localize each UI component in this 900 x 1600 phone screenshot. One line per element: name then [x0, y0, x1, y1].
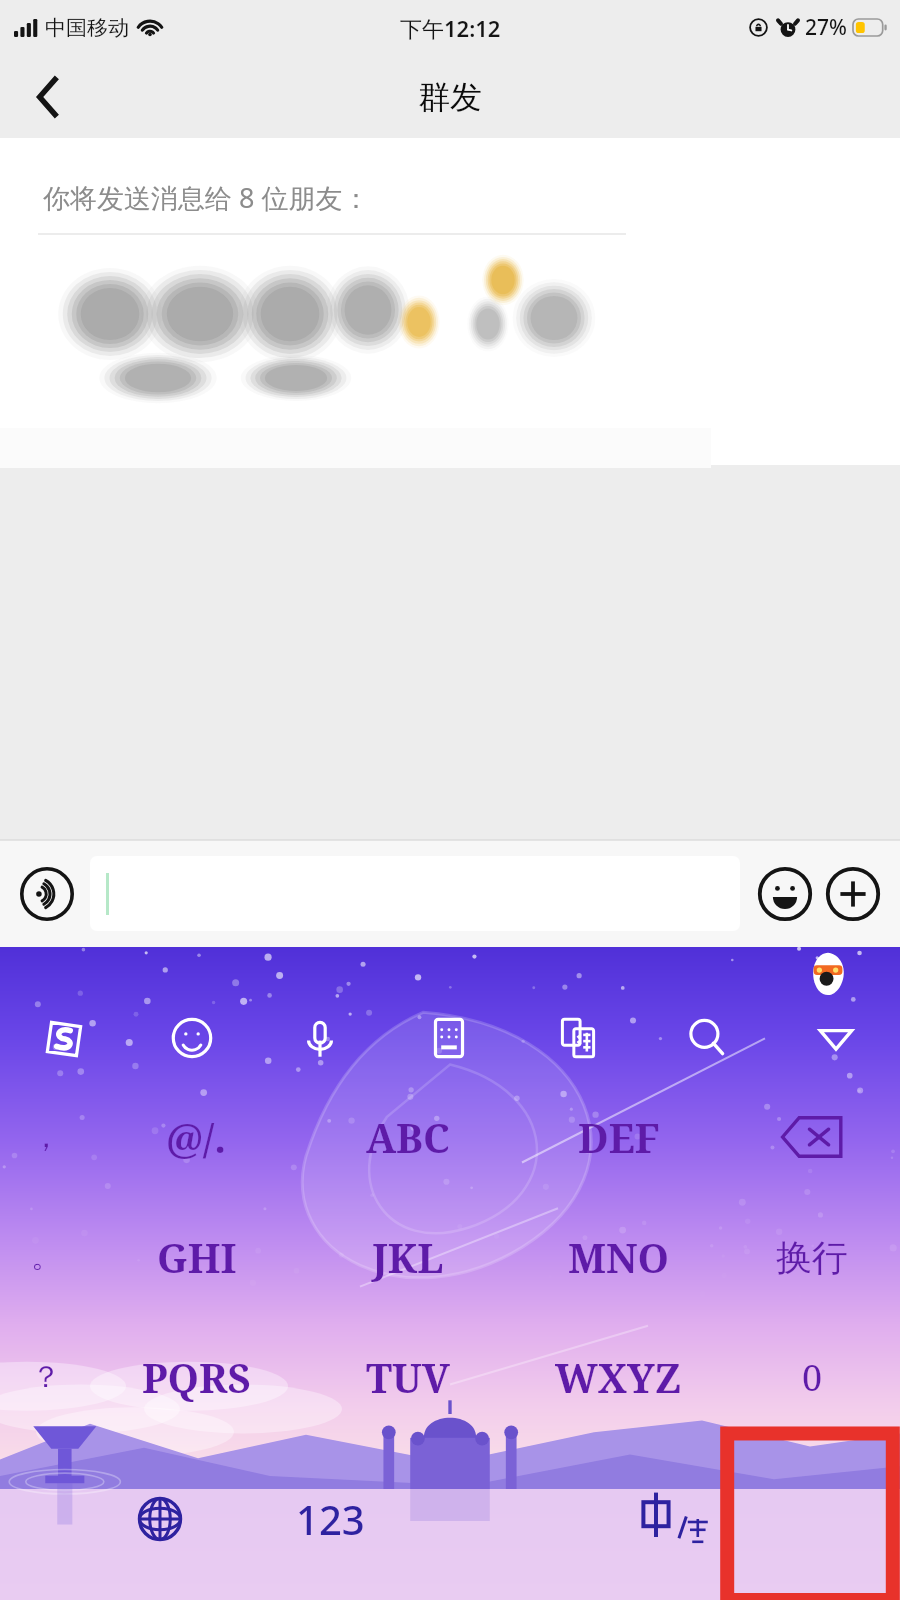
staticText: TUV	[366, 1350, 450, 1404]
button[interactable]: Assistant	[804, 949, 852, 997]
button[interactable]: ABC	[302, 1077, 513, 1197]
button[interactable]: PQRS	[91, 1317, 302, 1437]
button[interactable]	[90, 856, 740, 931]
button[interactable]: Keyboard layout	[384, 999, 513, 1077]
button[interactable]: Theme	[416, 1437, 587, 1600]
staticText: 下午12:12	[400, 13, 501, 43]
button[interactable]: Back	[0, 55, 96, 138]
button[interactable]: JKL	[302, 1197, 513, 1317]
button[interactable]: ，	[0, 1077, 91, 1197]
staticText: GHI	[157, 1230, 237, 1284]
button[interactable]: 换行	[724, 1197, 900, 1317]
staticText: ？	[31, 1358, 61, 1396]
staticText: ABC	[366, 1110, 450, 1164]
button[interactable]: TUV	[302, 1317, 513, 1437]
button[interactable]	[0, 1437, 74, 1600]
button[interactable]: 。	[0, 1197, 91, 1317]
staticText: MNO	[568, 1230, 670, 1284]
staticText: DEF	[578, 1110, 660, 1164]
staticText: PQRS	[142, 1350, 251, 1404]
button[interactable]: WXYZ	[513, 1317, 724, 1437]
button[interactable]: GHI	[91, 1197, 302, 1317]
other: Delete	[780, 1114, 844, 1160]
button[interactable]: Sogou	[0, 999, 128, 1077]
button[interactable]: Send	[758, 1437, 900, 1600]
button[interactable]: 0	[724, 1317, 900, 1437]
staticText: 。	[31, 1238, 61, 1276]
staticText: WXYZ	[555, 1350, 682, 1404]
button[interactable]: ？	[0, 1317, 91, 1437]
staticText: @/.	[166, 1110, 227, 1164]
button[interactable]: More	[824, 865, 882, 923]
button[interactable]: 123	[245, 1437, 416, 1600]
button[interactable]: Translate	[513, 999, 642, 1077]
staticText: JKL	[372, 1230, 444, 1284]
staticText: 群发	[418, 77, 482, 117]
button[interactable]: Emoji	[128, 999, 256, 1077]
button[interactable]: Emoji	[756, 865, 814, 923]
button[interactable]: Input language	[74, 1437, 245, 1600]
button[interactable]: Chinese English toggle	[587, 1437, 758, 1600]
button[interactable]: Hide keyboard	[771, 999, 900, 1077]
button[interactable]: Voice input	[18, 865, 76, 923]
staticText: 中国移动	[45, 15, 129, 41]
staticText: 27%	[805, 13, 847, 42]
button[interactable]: @/.	[91, 1077, 302, 1197]
button[interactable]: Recipients	[38, 234, 638, 434]
staticText: ，	[31, 1118, 61, 1156]
button[interactable]: Search	[642, 999, 771, 1077]
staticText: 0	[802, 1353, 823, 1402]
staticText: 123	[296, 1492, 365, 1546]
staticText: 换行	[776, 1235, 848, 1280]
button[interactable]: DEF	[513, 1077, 724, 1197]
button[interactable]: Voice	[256, 999, 384, 1077]
button[interactable]: Delete	[724, 1077, 900, 1197]
staticText: 你将发送消息给 8 位朋友：	[43, 179, 370, 216]
button[interactable]: MNO	[513, 1197, 724, 1317]
